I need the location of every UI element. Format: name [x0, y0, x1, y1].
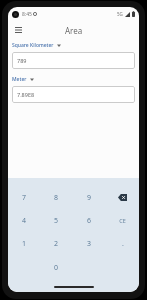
- staticText: 4: [22, 216, 27, 226]
- staticText: 3: [87, 239, 92, 249]
- staticText: 7: [22, 193, 27, 203]
- staticText: CE: [119, 217, 126, 224]
- staticText: 5: [54, 216, 59, 226]
- staticText: 9: [87, 193, 92, 203]
- button[interactable]: Open navigation menu: [10, 22, 26, 38]
- button[interactable]: 5: [40, 209, 73, 232]
- button[interactable]: 6: [73, 209, 106, 232]
- staticText: 789: [17, 57, 27, 64]
- staticText: 2: [54, 239, 59, 249]
- button[interactable]: 8: [40, 186, 73, 209]
- other: Backspace: [117, 192, 128, 203]
- button[interactable]: 2: [40, 232, 73, 256]
- button[interactable]: Square Kilometer: [12, 42, 61, 49]
- staticText: 6: [87, 216, 92, 226]
- button[interactable]: Backspace: [106, 186, 139, 209]
- button[interactable]: 0: [40, 256, 73, 280]
- staticText: 5G: [117, 11, 123, 17]
- button[interactable]: Meter: [12, 76, 34, 83]
- staticText: 0: [54, 263, 59, 273]
- button[interactable]: 3: [73, 232, 106, 256]
- button[interactable]: 9: [73, 186, 106, 209]
- staticText: .: [122, 239, 124, 249]
- staticText: 8:45: [22, 11, 32, 18]
- button[interactable]: 4: [8, 209, 40, 232]
- button[interactable]: 7.89E8: [12, 86, 135, 103]
- staticText: 7.89E8: [17, 91, 35, 98]
- staticText: 8: [54, 193, 59, 203]
- staticText: Meter: [12, 76, 27, 83]
- staticText: Area: [65, 25, 83, 36]
- staticText: 1: [22, 239, 27, 249]
- button[interactable]: 1: [8, 232, 40, 256]
- button[interactable]: CE: [106, 209, 139, 232]
- button[interactable]: 789: [12, 52, 135, 69]
- button[interactable]: 7: [8, 186, 40, 209]
- staticText: Square Kilometer: [12, 42, 54, 49]
